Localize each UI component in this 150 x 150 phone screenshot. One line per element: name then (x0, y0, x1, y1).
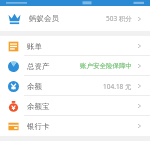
button[interactable]: 账单 (0, 36, 150, 56)
other: Open (137, 82, 142, 90)
staticText: 总资产 (27, 62, 50, 71)
other: Open (137, 102, 142, 110)
staticText: 503 积分 (106, 14, 132, 23)
other: Open (137, 122, 142, 130)
other: Open (137, 42, 142, 50)
staticText: 余额 (27, 82, 42, 91)
staticText: 账户安全险保障中 (80, 62, 132, 70)
button[interactable]: 蚂蚁会员 (0, 6, 150, 31)
staticText: 104.18 元 (103, 82, 132, 91)
staticText: 银行卡 (27, 122, 50, 131)
staticText: 余额宝 (27, 102, 50, 111)
other: Open (137, 62, 142, 70)
staticText: 蚂蚁会员 (29, 14, 59, 23)
button[interactable]: 银行卡 (0, 116, 150, 136)
staticText: 账单 (27, 42, 42, 51)
button[interactable]: 余额宝 (0, 96, 150, 116)
other: Open (137, 15, 142, 23)
button[interactable]: 余额 (0, 76, 150, 96)
button[interactable]: 总资产 (0, 56, 150, 76)
